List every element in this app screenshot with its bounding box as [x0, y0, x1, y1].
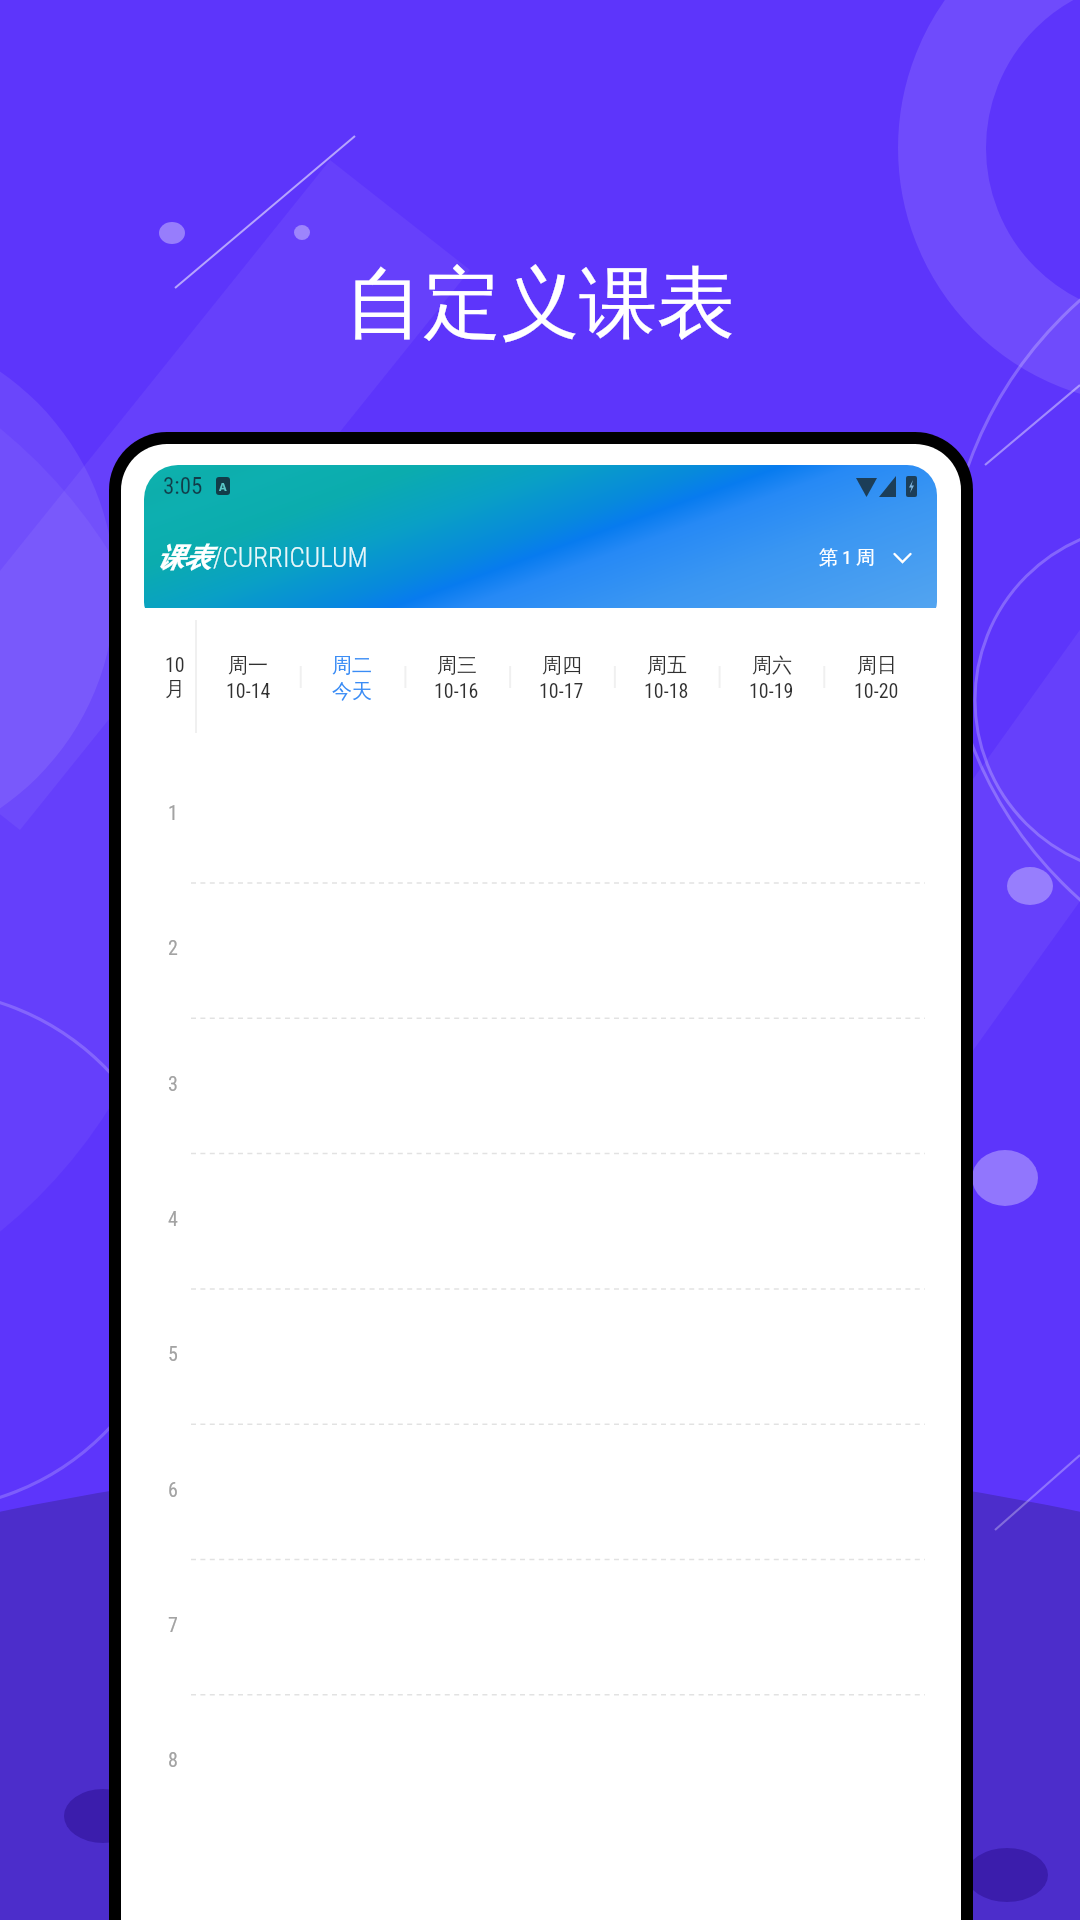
staticText: 自定义课表 [0, 255, 1080, 353]
staticText: 今天 [332, 679, 372, 704]
staticText: 周三 [437, 653, 477, 678]
staticText: 周一 [228, 653, 268, 678]
staticText: 3:05 [163, 473, 203, 500]
button[interactable]: 周日 [824, 608, 929, 734]
staticText: 课表 [157, 541, 211, 575]
staticText: 周二 [332, 653, 372, 678]
button[interactable]: 周六 [719, 608, 824, 734]
staticText: 月 [165, 677, 185, 702]
button[interactable]: 10 [121, 608, 196, 734]
staticText: /CURRICULUM [213, 542, 368, 574]
staticText: 7 [168, 1613, 178, 1636]
staticText: 周日 [857, 653, 897, 678]
staticText: 10-16 [434, 679, 479, 702]
staticText: 1 [168, 801, 178, 824]
staticText: 周四 [542, 653, 582, 678]
button[interactable]: 周四 [509, 608, 614, 734]
button[interactable]: 周一 [196, 608, 300, 734]
staticText: 10 [165, 653, 185, 676]
button[interactable]: 周三 [404, 608, 509, 734]
staticText: 10-14 [226, 679, 271, 702]
staticText: 5 [168, 1342, 178, 1365]
staticText: 10-18 [644, 679, 689, 702]
staticText: 10-17 [539, 679, 584, 702]
staticText: 2 [168, 936, 178, 959]
button[interactable]: 周五 [614, 608, 719, 734]
staticText: 3 [168, 1072, 178, 1095]
staticText: A [219, 479, 227, 494]
staticText: 10-19 [749, 679, 794, 702]
staticText: 周五 [647, 653, 687, 678]
button[interactable]: Select week [815, 538, 916, 578]
staticText: 4 [168, 1207, 178, 1230]
button[interactable]: 周二 [300, 608, 404, 734]
staticText: 第 1 周 [819, 546, 876, 570]
staticText: 8 [168, 1748, 178, 1771]
staticText: 6 [168, 1478, 178, 1501]
staticText: 10-20 [854, 679, 899, 702]
staticText: 周六 [752, 653, 792, 678]
